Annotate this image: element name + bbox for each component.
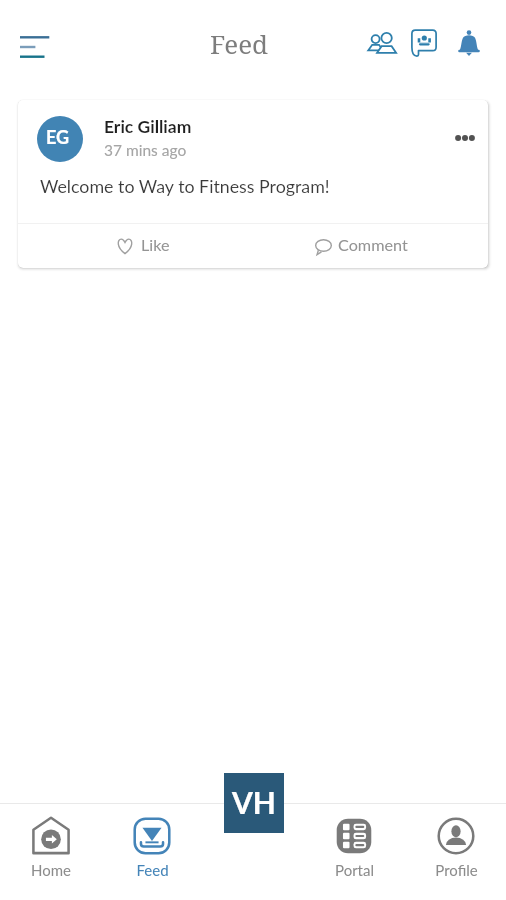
staticText: Feed — [210, 26, 269, 61]
staticText: 37 mins ago — [104, 141, 187, 160]
staticText: Portal — [335, 861, 374, 879]
staticText: Comment — [338, 235, 408, 254]
staticText: Home — [31, 861, 71, 879]
button[interactable]: Notifications — [451, 25, 487, 61]
button[interactable]: VH — [224, 773, 284, 833]
button[interactable]: Portal — [320, 803, 388, 895]
staticText: Welcome to Way to Fitness Program! — [40, 175, 330, 196]
staticText: Like — [141, 235, 170, 254]
button[interactable]: Profile — [422, 803, 490, 895]
staticText: Feed — [136, 861, 169, 879]
button[interactable]: Home — [17, 803, 85, 895]
button[interactable]: Menu — [20, 27, 60, 67]
button[interactable]: EG — [18, 100, 488, 268]
button[interactable]: Comment — [315, 222, 408, 266]
button[interactable]: More options — [447, 120, 483, 156]
button[interactable]: Feed — [118, 803, 186, 895]
staticText: EG — [46, 126, 70, 148]
button[interactable]: Friends — [364, 25, 400, 61]
staticText: Eric Gilliam — [104, 116, 192, 137]
button[interactable]: Messages — [406, 24, 442, 60]
button[interactable]: Like — [116, 222, 170, 266]
staticText: VH — [232, 784, 276, 820]
staticText: Profile — [435, 861, 478, 879]
